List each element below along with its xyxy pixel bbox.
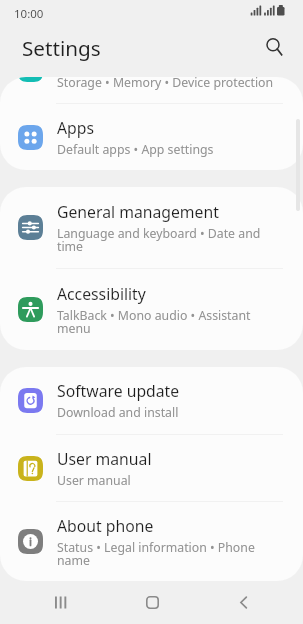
button[interactable]: Software update bbox=[0, 367, 303, 434]
staticText: Settings bbox=[22, 34, 101, 62]
staticText: Status • Legal information • Phone name bbox=[57, 539, 279, 568]
staticText: 10:00 bbox=[14, 6, 44, 22]
button[interactable]: Back bbox=[212, 581, 274, 624]
button[interactable]: User manual bbox=[0, 435, 303, 501]
button[interactable]: Apps bbox=[0, 104, 303, 170]
staticText: User manual bbox=[57, 448, 152, 469]
button[interactable]: Accessibility bbox=[0, 269, 303, 350]
staticText: Accessibility bbox=[57, 283, 146, 304]
button[interactable]: Storage • Memory • Device protection bbox=[0, 77, 303, 103]
staticText: TalkBack • Mono audio • Assistant menu bbox=[57, 307, 279, 336]
staticText: Apps bbox=[57, 117, 94, 138]
button[interactable]: About phone bbox=[0, 502, 303, 581]
staticText: Download and install bbox=[57, 404, 179, 421]
staticText: Default apps • App settings bbox=[57, 141, 214, 158]
staticText: About phone bbox=[57, 515, 154, 536]
staticText: Software update bbox=[57, 380, 180, 401]
staticText: Storage • Memory • Device protection bbox=[57, 77, 289, 91]
button[interactable]: General management bbox=[0, 187, 303, 268]
button[interactable]: Search bbox=[259, 31, 287, 59]
staticText: User manual bbox=[57, 472, 131, 489]
staticText: Language and keyboard • Date and time bbox=[57, 225, 279, 254]
staticText: General management bbox=[57, 201, 219, 222]
button[interactable]: Recents bbox=[29, 581, 91, 624]
button[interactable]: Home bbox=[121, 581, 183, 624]
